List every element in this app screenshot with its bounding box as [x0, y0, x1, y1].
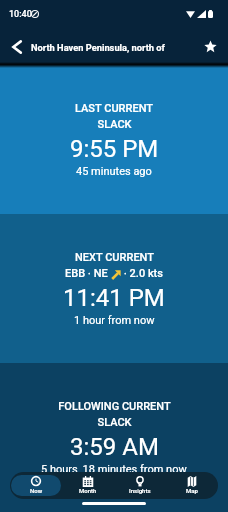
staticText: NEXT CURRENT — [75, 251, 154, 264]
staticText: Now — [30, 487, 43, 494]
staticText: Month — [79, 487, 97, 494]
staticText: 11:41 PM — [63, 284, 165, 312]
staticText: 9:55 PM — [70, 135, 159, 163]
button[interactable]: Now — [11, 475, 61, 496]
button[interactable]: Back — [4, 28, 30, 65]
staticText: SLACK — [97, 416, 132, 429]
button[interactable]: NEXT CURRENT — [0, 214, 228, 363]
staticText: 10:40 — [9, 9, 32, 20]
staticText: · 2.0 kts — [121, 267, 163, 280]
button[interactable]: Insights — [115, 475, 165, 496]
staticText: 1 hour from now — [74, 314, 155, 327]
staticText: FOLLOWING CURRENT — [58, 400, 171, 413]
staticText: Insights — [129, 487, 151, 494]
button[interactable]: Map — [167, 475, 217, 496]
staticText: North Haven Peninsula, north of — [31, 42, 165, 53]
staticText: EBB · NE — [65, 267, 111, 280]
staticText: 45 minutes ago — [76, 165, 152, 178]
button[interactable]: LAST CURRENT — [0, 65, 228, 214]
button[interactable]: FOLLOWING CURRENT — [0, 363, 228, 512]
button[interactable]: Month — [63, 475, 113, 496]
staticText: Map — [186, 487, 198, 494]
staticText: SLACK — [97, 118, 132, 131]
staticText: LAST CURRENT — [75, 102, 153, 115]
staticText: 3:59 AM — [70, 433, 159, 461]
staticText: 5 hours, 18 minutes from now — [41, 463, 187, 476]
button[interactable]: Favorite — [196, 28, 224, 65]
